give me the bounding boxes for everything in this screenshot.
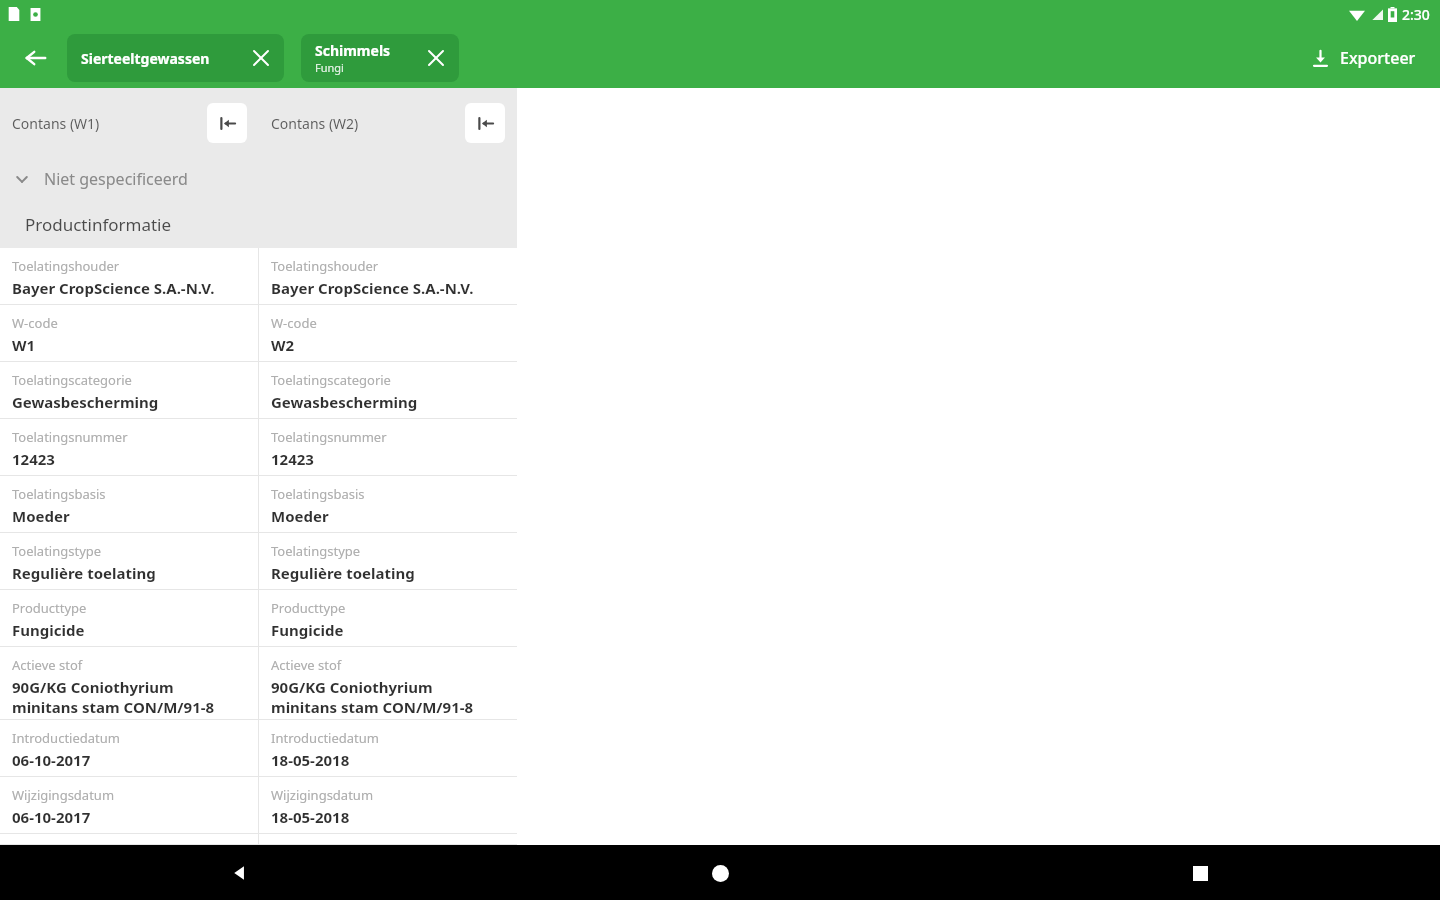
button[interactable]: Toelatingshouder [0,248,517,305]
staticText: Toelatingsbasis [12,485,106,503]
button[interactable]: Verwijder Sierteeltgewassen [248,45,274,71]
staticText: Toelatingscategorie [271,371,391,389]
staticText: W1 [12,335,36,355]
staticText: Moeder [12,506,70,526]
staticText: Toelatingshouder [12,257,120,275]
staticText: Gewasbescherming [271,392,418,412]
button[interactable]: Kolom inklappen [465,103,505,143]
staticText: Actieve stof [271,656,342,674]
button[interactable]: Introductiedatum [0,720,517,777]
staticText: Actieve stof [12,656,83,674]
staticText: Contans (W1) [12,114,207,133]
staticText: Toelatingscategorie [12,371,132,389]
staticText: 90G/KG Coniothyrium minitans stam CON/M/… [271,677,474,717]
button[interactable]: Verwijder Schimmels [423,45,449,71]
staticText: Toelatingshouder [271,257,379,275]
button[interactable]: Toelatingsnummer [0,419,517,476]
staticText: Marktondatum [271,843,364,845]
button[interactable]: Home [697,850,743,896]
staticText: Bayer CropScience S.A.-N.V. [12,278,215,298]
staticText: Introductiedatum [12,729,120,747]
button[interactable]: Wijzigingsdatum [0,777,517,834]
staticText: Toelatingsnummer [271,428,387,446]
staticText: Toelatingsbasis [271,485,365,503]
staticText: Toelatingstype [12,542,102,560]
staticText: Moeder [271,506,329,526]
staticText: Wijzigingsdatum [12,786,115,804]
staticText: Fungicide [271,620,344,640]
staticText: Fungicide [12,620,85,640]
staticText: Schimmels [315,41,391,60]
staticText: Productinformatie [25,213,172,236]
staticText: Wijzigingsdatum [271,786,374,804]
button[interactable]: Recente apps [1177,850,1223,896]
staticText: Fungi [315,60,344,75]
staticText: Bayer CropScience S.A.-N.V. [271,278,474,298]
staticText: Exporteer [1340,47,1416,69]
button[interactable]: Exporteer [1304,41,1424,75]
staticText: Niet gespecificeerd [44,168,188,190]
staticText: 18-05-2018 [271,750,350,770]
staticText: Sierteeltgewassen [81,49,210,68]
staticText: Toelatingsnummer [12,428,128,446]
button[interactable]: W-code [0,305,517,362]
staticText: W-code [12,314,58,332]
button[interactable]: Producttype [0,590,517,647]
staticText: W-code [271,314,317,332]
staticText: 12423 [271,449,314,469]
staticText: 2:30 [1402,5,1430,24]
staticText: Regulière toelating [271,563,415,583]
button[interactable]: Toelatingstype [0,533,517,590]
button[interactable]: Sierteeltgewassen [67,34,284,82]
staticText: 12423 [12,449,55,469]
button[interactable]: Toelatingsbasis [0,476,517,533]
button[interactable]: Toelatingscategorie [0,362,517,419]
button[interactable]: Schimmels [301,34,459,82]
button[interactable]: Kolom inklappen [207,103,247,143]
staticText: 18-05-2018 [271,807,350,827]
button[interactable]: Marktondatum [0,834,517,845]
staticText: Marktondatum [12,843,105,845]
staticText: Regulière toelating [12,563,156,583]
button[interactable]: Niet gespecificeerd [0,158,517,200]
staticText: Gewasbescherming [12,392,159,412]
staticText: 06-10-2017 [12,750,91,770]
staticText: Contans (W2) [271,114,465,133]
button[interactable]: Terug [217,850,263,896]
staticText: 06-10-2017 [12,807,91,827]
staticText: Producttype [271,599,346,617]
staticText: Introductiedatum [271,729,379,747]
button[interactable]: Terug [18,40,54,76]
button[interactable]: Actieve stof [0,647,517,720]
staticText: Producttype [12,599,87,617]
staticText: 90G/KG Coniothyrium minitans stam CON/M/… [12,677,215,717]
staticText: W2 [271,335,295,355]
staticText: Toelatingstype [271,542,361,560]
